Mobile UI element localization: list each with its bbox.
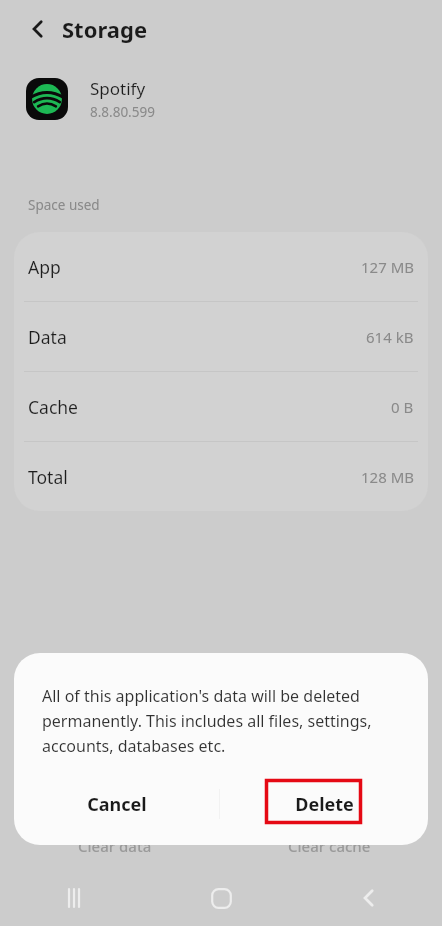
staticText: Cancel xyxy=(87,792,147,817)
button[interactable]: App xyxy=(14,232,428,301)
staticText: Cache xyxy=(28,395,78,419)
button[interactable]: Delete xyxy=(220,775,428,833)
staticText: All of this application's data will be d… xyxy=(42,685,402,756)
staticText: Clear data xyxy=(78,836,152,856)
button[interactable]: Home xyxy=(148,870,295,926)
staticText: 8.8.80.599 xyxy=(90,103,155,121)
staticText: Data xyxy=(28,325,67,349)
staticText: 0 B xyxy=(391,397,414,417)
button[interactable]: Total xyxy=(14,442,428,511)
staticText: 614 kB xyxy=(366,327,414,347)
button[interactable]: Cache xyxy=(14,372,428,441)
staticText: Total xyxy=(28,465,68,489)
staticText: 127 MB xyxy=(361,257,414,277)
button[interactable]: Cancel xyxy=(14,775,219,833)
staticText: Clear cache xyxy=(288,836,371,856)
button[interactable]: Recents xyxy=(0,870,148,926)
staticText: Delete xyxy=(295,792,354,817)
staticText: 128 MB xyxy=(361,467,414,487)
button[interactable]: Back xyxy=(14,5,62,53)
staticText: Spotify xyxy=(90,77,146,100)
staticText: Storage xyxy=(62,14,148,44)
button[interactable]: Data xyxy=(14,302,428,371)
staticText: App xyxy=(28,255,61,279)
button[interactable]: Spotify xyxy=(0,58,442,140)
staticText: Space used xyxy=(28,196,100,214)
